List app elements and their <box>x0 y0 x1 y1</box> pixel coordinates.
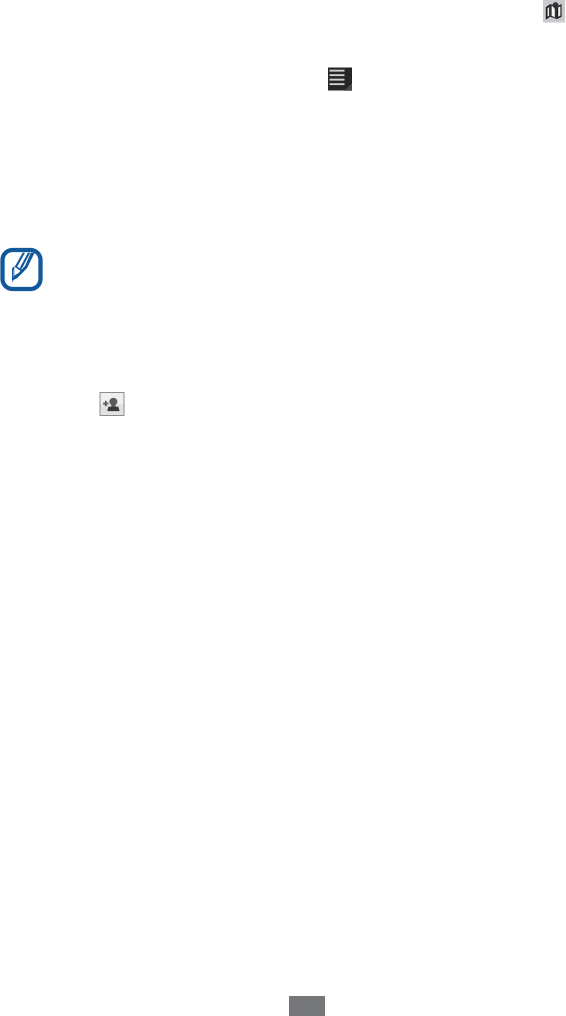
button[interactable]: Note app <box>1 249 41 290</box>
button[interactable]: Add contact <box>100 392 124 415</box>
button[interactable]: Maps <box>543 0 565 22</box>
button[interactable]: Document <box>328 67 352 90</box>
